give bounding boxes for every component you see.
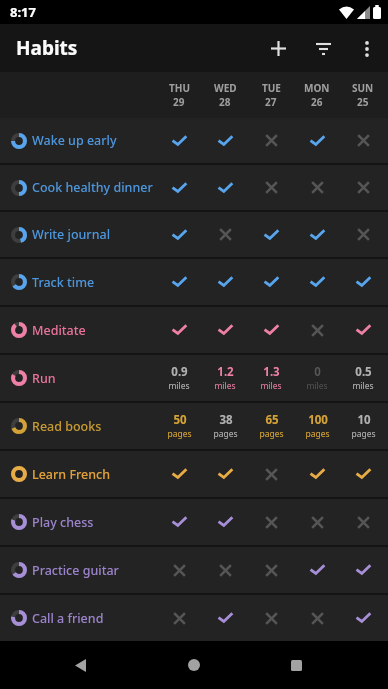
staticText: Play chess xyxy=(32,514,94,531)
button[interactable] xyxy=(248,595,294,641)
staticText: 0.5 xyxy=(355,364,372,380)
button[interactable] xyxy=(294,547,340,593)
button[interactable]: 0 xyxy=(294,355,340,401)
button[interactable]: 0.9 xyxy=(156,355,202,401)
button[interactable] xyxy=(256,26,301,71)
staticText: THU xyxy=(169,81,190,95)
button[interactable] xyxy=(340,259,386,305)
button[interactable]: 50 xyxy=(156,403,202,449)
button[interactable]: 0.5 xyxy=(340,355,386,401)
staticText: 0 xyxy=(314,364,321,380)
button[interactable]: Call a friend xyxy=(0,595,388,641)
staticText: 27 xyxy=(265,95,277,109)
button[interactable] xyxy=(340,118,386,163)
button[interactable]: 65 xyxy=(248,403,294,449)
button[interactable] xyxy=(202,499,248,545)
button[interactable]: Run xyxy=(0,355,388,401)
button[interactable] xyxy=(248,259,294,305)
button[interactable] xyxy=(294,307,340,353)
button[interactable]: 10 xyxy=(340,403,386,449)
button[interactable] xyxy=(156,118,202,163)
staticText: Read books xyxy=(32,418,102,435)
button[interactable] xyxy=(248,118,294,163)
button[interactable]: Meditate xyxy=(0,307,388,353)
button[interactable] xyxy=(294,259,340,305)
button[interactable] xyxy=(294,451,340,497)
button[interactable] xyxy=(156,547,202,593)
button[interactable] xyxy=(248,307,294,353)
button[interactable] xyxy=(202,547,248,593)
button[interactable] xyxy=(202,165,248,210)
button[interactable] xyxy=(202,259,248,305)
staticText: miles xyxy=(168,380,190,392)
staticText: Run xyxy=(32,370,56,387)
button[interactable] xyxy=(156,499,202,545)
staticText: 0.9 xyxy=(171,364,188,380)
button[interactable] xyxy=(294,595,340,641)
button[interactable] xyxy=(340,451,386,497)
button[interactable]: 1.3 xyxy=(248,355,294,401)
button[interactable] xyxy=(202,451,248,497)
staticText: Wake up early xyxy=(32,132,117,149)
staticText: 29 xyxy=(173,95,185,109)
staticText: WED xyxy=(214,81,237,95)
staticText: miles xyxy=(214,380,236,392)
button[interactable] xyxy=(156,165,202,210)
button[interactable]: 100 xyxy=(294,403,340,449)
staticText: Practice guitar xyxy=(32,562,119,579)
staticText: Meditate xyxy=(32,322,86,339)
button[interactable]: 1.2 xyxy=(202,355,248,401)
staticText: miles xyxy=(306,380,328,392)
button[interactable] xyxy=(202,595,248,641)
button[interactable] xyxy=(294,499,340,545)
button[interactable]: 38 xyxy=(202,403,248,449)
button[interactable] xyxy=(248,165,294,210)
button[interactable] xyxy=(248,212,294,257)
staticText: 26 xyxy=(311,95,323,109)
staticText: 50 xyxy=(173,412,187,428)
button[interactable] xyxy=(294,212,340,257)
button[interactable] xyxy=(340,307,386,353)
button[interactable] xyxy=(248,547,294,593)
staticText: miles xyxy=(260,380,282,392)
button[interactable] xyxy=(248,499,294,545)
button[interactable]: Write journal xyxy=(0,212,388,257)
staticText: 1.2 xyxy=(217,364,234,380)
staticText: miles xyxy=(352,380,374,392)
button[interactable] xyxy=(340,165,386,210)
button[interactable] xyxy=(340,499,386,545)
button[interactable] xyxy=(248,451,294,497)
button[interactable]: Practice guitar xyxy=(0,547,388,593)
button[interactable] xyxy=(340,547,386,593)
button[interactable] xyxy=(156,595,202,641)
button[interactable] xyxy=(202,212,248,257)
button[interactable] xyxy=(346,28,388,70)
staticText: 28 xyxy=(219,95,231,109)
button[interactable] xyxy=(294,165,340,210)
button[interactable] xyxy=(42,641,118,689)
button[interactable]: Read books xyxy=(0,403,388,449)
staticText: pages xyxy=(213,428,238,440)
button[interactable] xyxy=(294,118,340,163)
button[interactable] xyxy=(156,307,202,353)
button[interactable]: Learn French xyxy=(0,451,388,497)
button[interactable] xyxy=(156,212,202,257)
button[interactable] xyxy=(340,595,386,641)
button[interactable] xyxy=(258,641,334,689)
staticText: pages xyxy=(167,428,192,440)
button[interactable] xyxy=(202,307,248,353)
staticText: Cook healthy dinner xyxy=(32,179,153,196)
button[interactable] xyxy=(156,259,202,305)
button[interactable]: Track time xyxy=(0,259,388,305)
button[interactable]: Play chess xyxy=(0,499,388,545)
button[interactable] xyxy=(340,212,386,257)
button[interactable] xyxy=(156,451,202,497)
button[interactable]: Wake up early xyxy=(0,118,388,163)
staticText: 25 xyxy=(357,95,369,109)
button[interactable] xyxy=(156,641,232,689)
staticText: Call a friend xyxy=(32,610,104,627)
button[interactable] xyxy=(202,118,248,163)
button[interactable]: Cook healthy dinner xyxy=(0,165,388,210)
button[interactable] xyxy=(301,26,346,71)
staticText: MON xyxy=(304,81,330,95)
